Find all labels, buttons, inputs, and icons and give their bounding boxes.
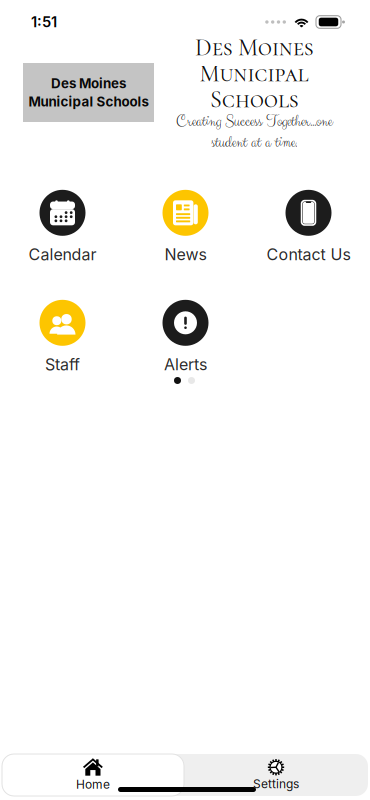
button[interactable]: News: [124, 189, 247, 265]
staticText: Settings: [253, 777, 299, 791]
staticText: Municipal Schools: [28, 93, 148, 110]
button[interactable]: Alerts: [124, 299, 247, 375]
staticText: student at a time.: [211, 132, 297, 153]
staticText: Creating Success Together...one: [176, 111, 332, 132]
staticText: Des Moines: [195, 33, 313, 62]
staticText: Staff: [45, 355, 80, 374]
staticText: Schools: [210, 85, 298, 114]
button[interactable]: Contact Us: [247, 189, 370, 265]
button[interactable]: Calendar: [1, 189, 124, 265]
button[interactable]: Home: [2, 754, 184, 796]
button[interactable]: Settings: [184, 754, 368, 796]
staticText: Municipal: [199, 59, 308, 88]
staticText: Calendar: [28, 245, 96, 264]
staticText: Des Moines: [51, 75, 126, 91]
staticText: Home: [76, 777, 110, 792]
staticText: News: [164, 245, 206, 264]
button[interactable]: Staff: [1, 299, 124, 375]
staticText: 1:51: [31, 13, 57, 31]
staticText: Contact Us: [266, 245, 350, 264]
staticText: Alerts: [164, 355, 207, 374]
